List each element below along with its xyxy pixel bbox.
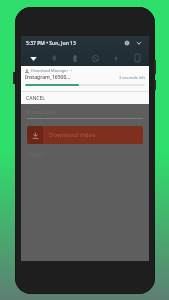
button[interactable]: Quick setting bbox=[108, 51, 124, 65]
button[interactable]: CANCEL bbox=[21, 92, 149, 104]
staticText: 3 seconds left bbox=[119, 75, 145, 80]
button[interactable]: Quick setting bbox=[129, 51, 145, 65]
button[interactable]: Quick setting bbox=[67, 51, 83, 65]
staticText: Download Video bbox=[49, 131, 96, 139]
button[interactable]: Quick setting bbox=[46, 51, 62, 65]
staticText: CANCEL bbox=[26, 95, 45, 102]
button[interactable]: Quick setting bbox=[87, 51, 103, 65]
button[interactable]: Download Manager bbox=[21, 66, 149, 104]
staticText: Instagram_1650051833176.mp4 bbox=[25, 74, 72, 81]
staticText: 5:37 PM • Sun, Jun 13 bbox=[26, 40, 76, 47]
staticText: • bbox=[71, 68, 73, 73]
button[interactable]: Settings bbox=[122, 38, 132, 48]
staticText: Download Manager bbox=[31, 68, 69, 73]
button[interactable]: Expand bbox=[134, 38, 144, 48]
button[interactable]: Download Video bbox=[27, 126, 143, 144]
staticText: Paste Link bbox=[27, 108, 56, 116]
button[interactable]: Paste Link bbox=[27, 108, 143, 119]
button[interactable]: Quick setting bbox=[25, 51, 41, 65]
